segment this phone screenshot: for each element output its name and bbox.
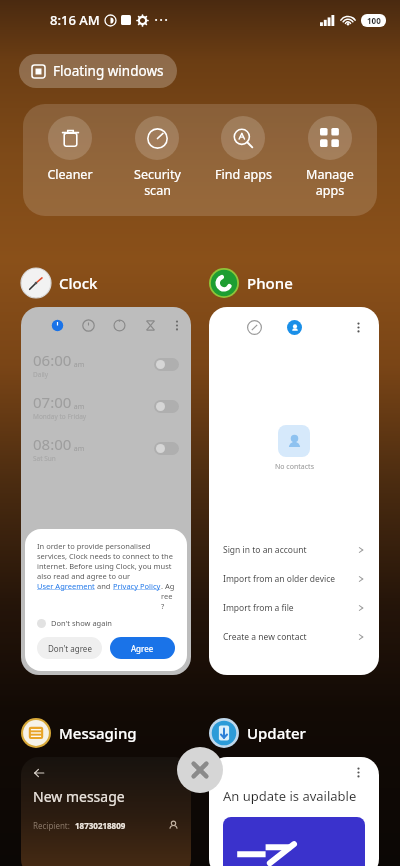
button[interactable]: No contacts — [209, 307, 379, 675]
button[interactable]: Don't agree — [37, 637, 102, 659]
button[interactable] — [154, 400, 179, 413]
staticText: Sat Sun — [33, 454, 56, 463]
staticText: 8:16 AM — [50, 11, 100, 29]
button[interactable]: Floating windows — [19, 54, 177, 88]
staticText: Don't agree — [48, 643, 92, 654]
button[interactable]: New message — [21, 757, 191, 866]
staticText: Phone — [247, 273, 293, 293]
staticText: Recipient: — [33, 820, 70, 831]
button[interactable]: Clock — [21, 263, 98, 303]
staticText: Find apps — [215, 166, 272, 183]
staticText: An update is available — [223, 787, 357, 805]
button[interactable]: Phone — [209, 263, 293, 303]
button[interactable]: Agree — [110, 637, 175, 659]
staticText: No contacts — [275, 462, 314, 472]
button[interactable]: 06:00 — [21, 307, 191, 675]
staticText: Sign in to an account — [223, 544, 307, 556]
staticText: User Agreement — [37, 581, 95, 591]
button[interactable]: Manage apps — [291, 116, 369, 198]
staticText: 07:00 — [33, 392, 72, 412]
staticText: Floating windows — [53, 62, 164, 80]
staticText: am — [72, 444, 85, 454]
button[interactable]: Create a new contact — [209, 622, 379, 651]
staticText: Cleaner — [47, 166, 93, 183]
button[interactable]: Find apps — [204, 116, 282, 183]
staticText: Manage apps — [306, 166, 354, 198]
staticText: am — [72, 402, 85, 412]
staticText: Don't show again — [51, 618, 112, 628]
button[interactable]: Cleaner — [31, 116, 109, 183]
staticText: Security scan — [134, 166, 181, 198]
staticText: 08:00 — [33, 434, 72, 454]
button[interactable]: Close all — [177, 747, 223, 793]
staticText: Monday to Friday — [33, 412, 87, 421]
button[interactable]: Messaging — [21, 713, 137, 753]
staticText: Agree — [131, 643, 154, 654]
button[interactable]: Security scan — [118, 116, 196, 198]
staticText: Privacy Policy — [113, 581, 161, 591]
staticText: . Agree? — [161, 581, 175, 611]
staticText: Updater — [247, 723, 306, 743]
staticText: 06:00 — [33, 350, 72, 370]
staticText: Clock — [59, 273, 98, 293]
staticText: 18730218809 — [75, 820, 126, 831]
button[interactable] — [154, 358, 179, 371]
staticText: Daily — [33, 370, 49, 379]
staticText: am — [72, 360, 85, 370]
staticText: Messaging — [59, 723, 137, 743]
staticText: 100 — [367, 15, 381, 26]
button[interactable]: Sign in to an account — [209, 535, 379, 564]
staticText: Create a new contact — [223, 631, 307, 643]
staticText: Import from a file — [223, 602, 294, 614]
button[interactable] — [154, 442, 179, 455]
button[interactable]: Import from a file — [209, 593, 379, 622]
staticText: New message — [33, 787, 125, 806]
button[interactable]: An update is available — [209, 757, 379, 866]
staticText: In order to provide personalised service… — [37, 541, 175, 581]
staticText: Import from an older device — [223, 573, 336, 585]
button[interactable]: Updater — [209, 713, 306, 753]
button[interactable]: Import from an older device — [209, 564, 379, 593]
button[interactable]: Don't show again — [37, 618, 112, 628]
staticText: and — [95, 581, 113, 591]
